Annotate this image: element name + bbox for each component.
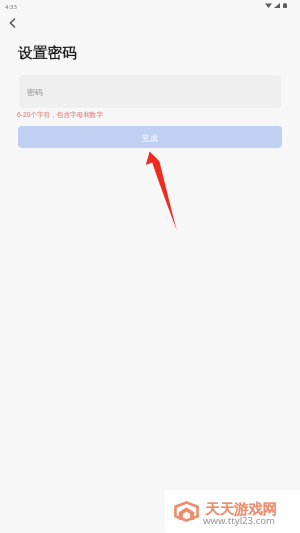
staticText: www.ttyl23.com bbox=[203, 514, 276, 527]
staticText: 6-20个字符，包含字母和数字 bbox=[17, 110, 103, 119]
staticText: 密码 bbox=[27, 87, 43, 97]
button[interactable]: 完成 bbox=[18, 126, 282, 148]
staticText: 完成 bbox=[142, 133, 158, 143]
button[interactable]: Back bbox=[2, 13, 22, 33]
staticText: 设置密码 bbox=[18, 44, 77, 62]
staticText: 天天游戏网 bbox=[205, 500, 277, 518]
button[interactable]: 密码 bbox=[19, 75, 281, 108]
staticText: 4:33 bbox=[5, 3, 17, 11]
